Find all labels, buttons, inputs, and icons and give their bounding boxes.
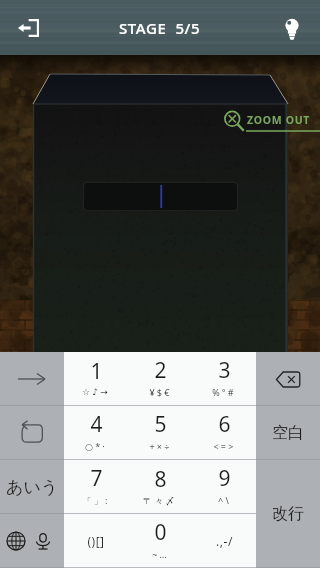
staticText: ☆♪→ xyxy=(82,387,110,397)
staticText: ZOOM OUT xyxy=(247,113,311,127)
staticText: .,-/ xyxy=(216,533,233,549)
staticText: ()[] xyxy=(87,533,105,549)
button[interactable]: Undo xyxy=(0,406,64,460)
button[interactable]: 0 xyxy=(128,514,192,568)
button[interactable]: 1 xyxy=(64,352,128,406)
button[interactable]: 9 xyxy=(192,460,256,514)
staticText: ○*· xyxy=(85,440,107,452)
staticText: あいう xyxy=(6,477,59,498)
button[interactable]: 7 xyxy=(64,460,128,514)
button[interactable]: 8 xyxy=(128,460,192,514)
button[interactable]: Hint xyxy=(274,10,310,46)
staticText: ^\ xyxy=(218,494,231,506)
staticText: ¥$€ xyxy=(149,386,172,398)
button[interactable]: Switch to kana xyxy=(0,460,64,514)
button[interactable]: ZOOM OUT xyxy=(220,107,320,137)
button[interactable]: Space xyxy=(256,406,320,460)
staticText: 改行 xyxy=(272,504,304,524)
staticText: ~… xyxy=(152,548,169,560)
staticText: <=> xyxy=(213,440,236,452)
staticText: 空白 xyxy=(272,423,304,443)
button[interactable]: Return xyxy=(256,460,320,568)
button[interactable]: .,-/ xyxy=(192,514,256,568)
button[interactable]: Next candidate xyxy=(0,352,64,406)
staticText: 8 xyxy=(154,465,167,494)
button[interactable]: 5 xyxy=(128,406,192,460)
button[interactable]: 6 xyxy=(192,406,256,460)
staticText: 5 xyxy=(154,410,167,439)
staticText: +×÷ xyxy=(149,440,172,452)
button[interactable]: 2 xyxy=(128,352,192,406)
button[interactable]: Delete xyxy=(256,352,320,406)
button[interactable]: ()[] xyxy=(64,514,128,568)
staticText: 9 xyxy=(218,464,231,493)
button[interactable] xyxy=(83,182,238,211)
staticText: 4 xyxy=(90,410,103,439)
staticText: 1 xyxy=(90,357,103,386)
staticText: 2 xyxy=(154,356,167,385)
staticText: 7 xyxy=(90,464,103,493)
button[interactable]: 3 xyxy=(192,352,256,406)
staticText: 6 xyxy=(218,410,231,439)
staticText: %°# xyxy=(212,386,236,398)
button[interactable]: Keyboard and microphone xyxy=(0,514,64,568)
button[interactable]: Exit stage xyxy=(14,14,42,42)
button[interactable]: 4 xyxy=(64,406,128,460)
staticText: 「」: xyxy=(82,494,110,506)
staticText: 〒々〆 xyxy=(143,495,177,506)
staticText: 3 xyxy=(218,356,231,385)
staticText: STAGE 5/5 xyxy=(119,18,201,38)
staticText: 0 xyxy=(154,518,167,547)
